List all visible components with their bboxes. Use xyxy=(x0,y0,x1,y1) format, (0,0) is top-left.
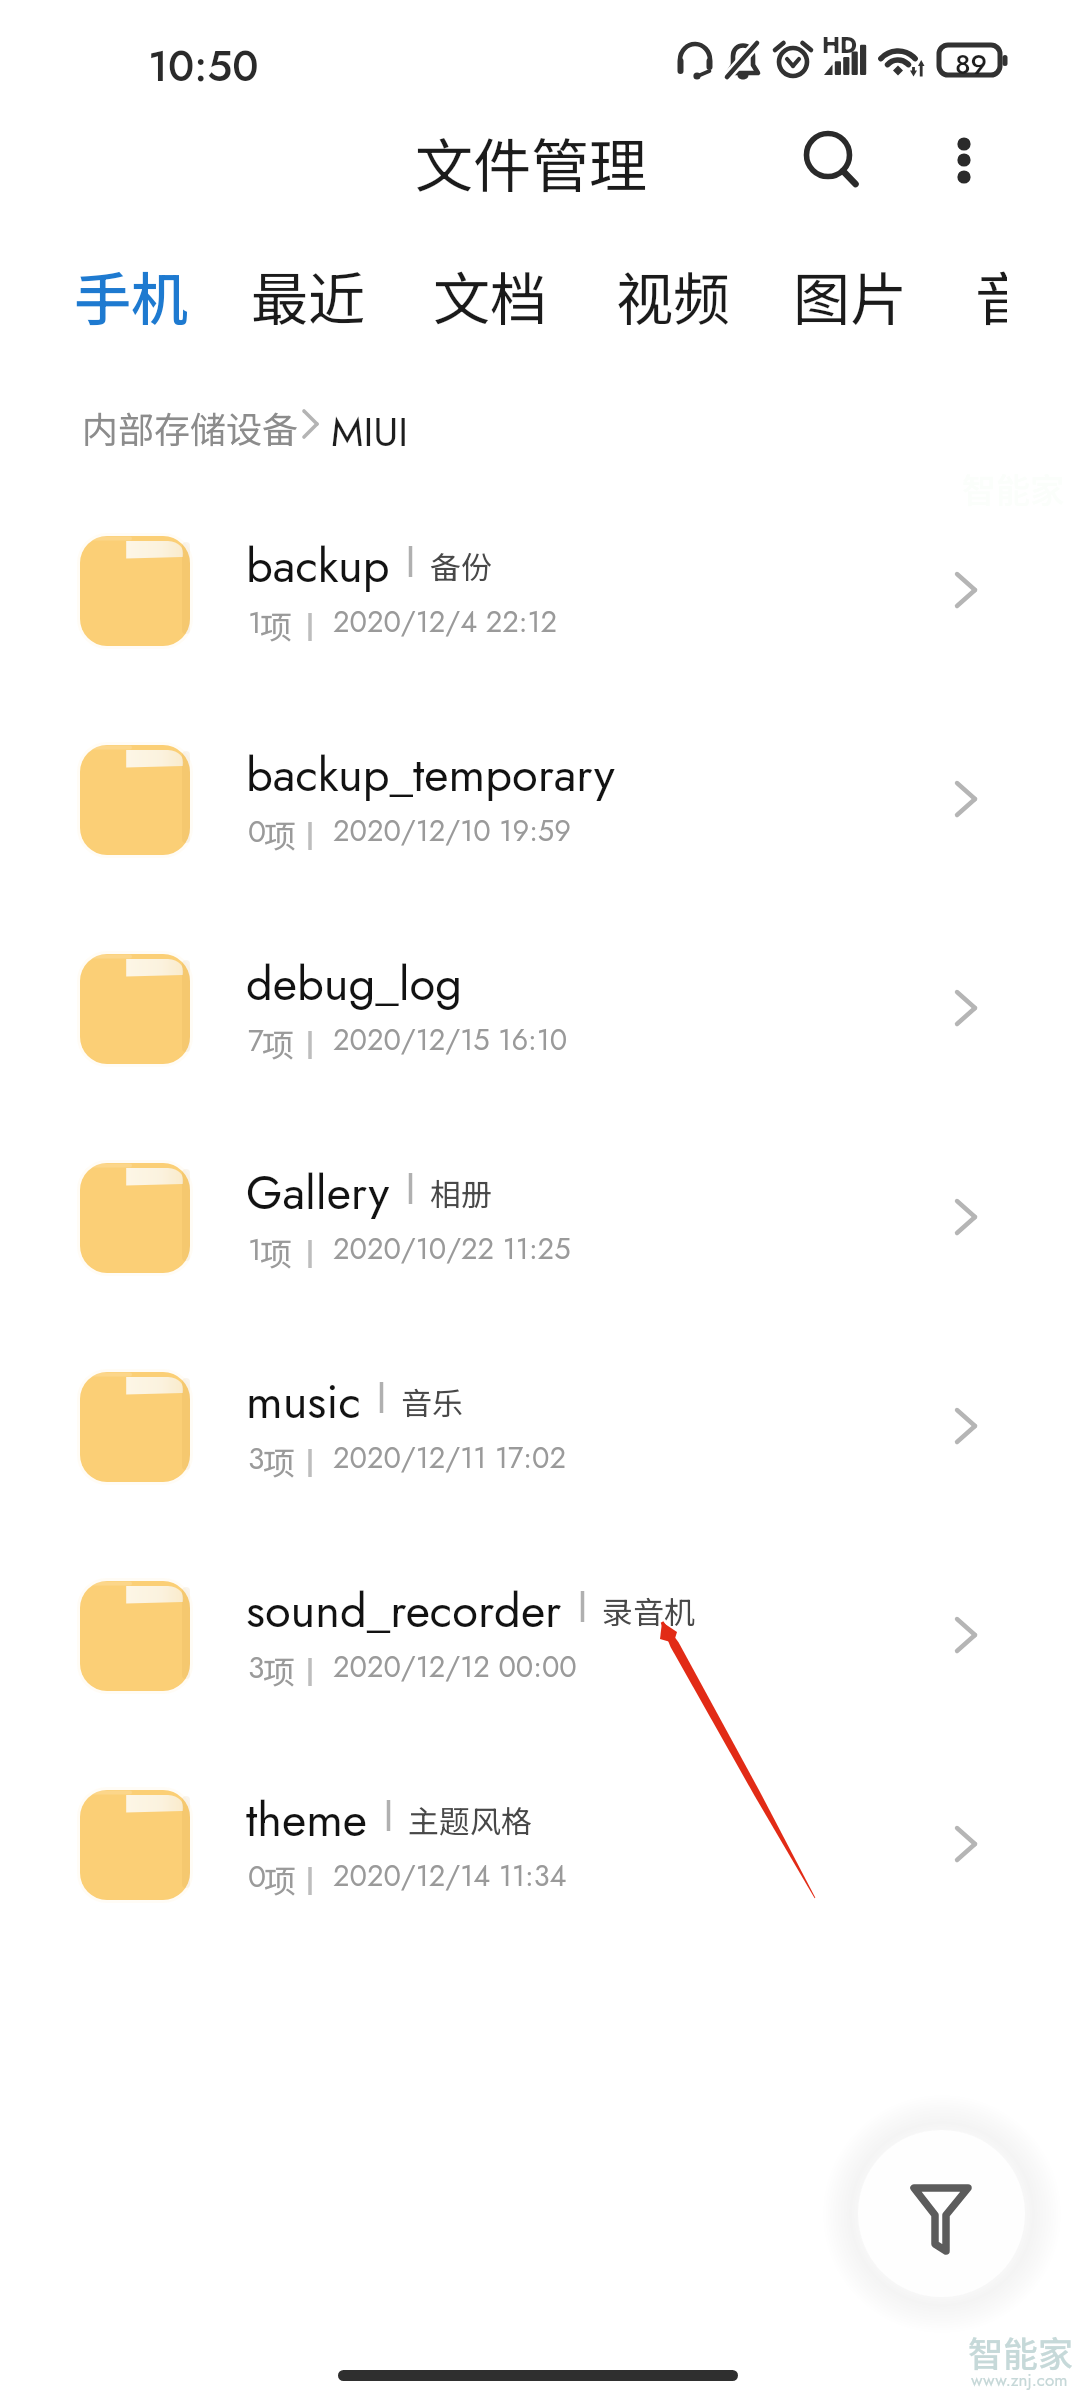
staticText: 主题风格 xyxy=(408,1797,532,1842)
button[interactable]: More options xyxy=(920,111,1010,201)
staticText: 录音机 xyxy=(602,1588,695,1633)
staticText: 项 xyxy=(264,1856,297,1902)
button[interactable]: backup_temporary xyxy=(0,701,1080,910)
staticText: 2020/12/10 19:59 xyxy=(333,810,571,852)
button[interactable]: 图片 xyxy=(776,235,924,355)
staticText: music xyxy=(246,1368,361,1436)
button[interactable]: theme xyxy=(0,1746,1080,1955)
staticText: 2020/12/12 00:00 xyxy=(333,1646,577,1688)
button[interactable]: 最近 xyxy=(234,235,382,355)
staticText: theme xyxy=(246,1786,368,1854)
button[interactable]: debug_log xyxy=(0,910,1080,1119)
staticText: 项 xyxy=(262,1020,295,1066)
staticText: 图片 xyxy=(793,254,907,337)
button[interactable]: Filter xyxy=(858,2130,1025,2297)
staticText: 视频 xyxy=(616,254,730,337)
staticText: 2020/10/22 11:25 xyxy=(333,1228,571,1270)
staticText: backup xyxy=(246,532,390,600)
staticText: 10:50 xyxy=(148,36,259,97)
staticText: 最近 xyxy=(251,254,365,337)
staticText: 0 xyxy=(248,1855,266,1898)
staticText: 3 xyxy=(248,1437,265,1480)
staticText: 1 xyxy=(248,601,262,644)
staticText: 1 xyxy=(248,1228,262,1271)
staticText: Gallery xyxy=(246,1159,390,1227)
button[interactable]: sound_recorder xyxy=(0,1537,1080,1746)
staticText: www.znj.com xyxy=(971,2368,1068,2393)
staticText: debug_log xyxy=(246,950,463,1018)
staticText: 智能家 xyxy=(968,2326,1074,2377)
staticText: HD xyxy=(822,28,857,61)
staticText: 2020/12/4 22:12 xyxy=(333,601,558,643)
button[interactable]: 音乐 xyxy=(958,235,1007,355)
staticText: 7 xyxy=(248,1019,264,1062)
staticText: 项 xyxy=(264,811,297,857)
staticText: 2020/12/11 17:02 xyxy=(333,1437,566,1479)
staticText: 项 xyxy=(260,602,293,648)
staticText: 0 xyxy=(248,810,266,853)
button[interactable]: Search xyxy=(778,111,878,211)
staticText: 文档 xyxy=(433,254,547,337)
staticText: 2020/12/14 11:34 xyxy=(333,1855,567,1897)
button[interactable]: backup xyxy=(0,492,1080,701)
staticText: 3 xyxy=(248,1646,265,1689)
staticText: 手机 xyxy=(74,254,188,337)
staticText: 音乐 xyxy=(975,254,1007,337)
staticText: 89 xyxy=(955,45,988,84)
button[interactable]: 手机 xyxy=(57,235,205,355)
button[interactable]: music xyxy=(0,1328,1080,1537)
button[interactable]: 视频 xyxy=(599,235,747,355)
staticText: 音乐 xyxy=(401,1379,463,1424)
staticText: 项 xyxy=(263,1647,296,1693)
staticText: 项 xyxy=(263,1438,296,1484)
staticText: 相册 xyxy=(430,1170,492,1215)
staticText: MIUI xyxy=(331,403,409,461)
button[interactable]: 文档 xyxy=(416,235,564,355)
staticText: 备份 xyxy=(430,543,492,588)
staticText: 文件管理 xyxy=(415,120,648,204)
staticText: 项 xyxy=(260,1229,293,1275)
button[interactable]: 内部存储设备 xyxy=(70,394,470,470)
staticText: 2020/12/15 16:10 xyxy=(333,1019,568,1061)
staticText: 内部存储设备 xyxy=(82,401,299,453)
staticText: backup_temporary xyxy=(246,741,615,809)
button[interactable]: Gallery xyxy=(0,1119,1080,1328)
staticText: sound_recorder xyxy=(246,1577,562,1645)
